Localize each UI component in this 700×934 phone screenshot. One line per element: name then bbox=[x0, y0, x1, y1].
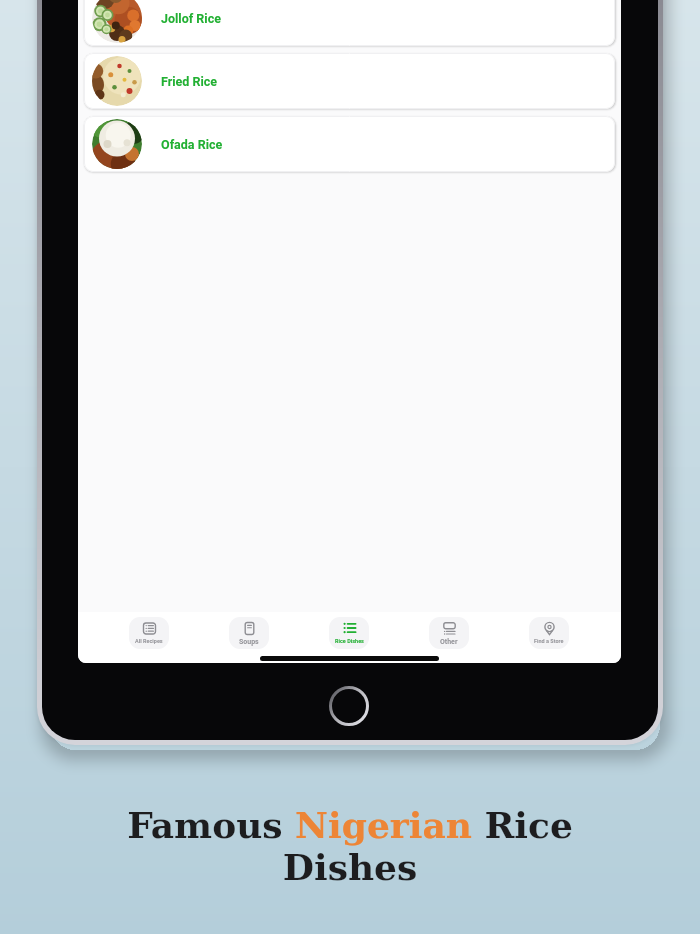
button[interactable]: Find a Store bbox=[529, 617, 569, 649]
button[interactable]: Rice Dishes bbox=[329, 617, 369, 649]
button[interactable]: All Recipes bbox=[129, 617, 169, 649]
button[interactable]: Ofada Rice bbox=[84, 116, 615, 172]
button[interactable]: Fried Rice bbox=[84, 53, 615, 109]
staticText: Jollof Rice bbox=[161, 11, 221, 26]
staticText: All Recipes bbox=[135, 638, 163, 644]
staticText: Other bbox=[440, 638, 458, 646]
button[interactable]: Jollof Rice bbox=[84, 0, 615, 46]
staticText: Famous Nigerian Rice Dishes bbox=[127, 804, 573, 889]
staticText: Find a Store bbox=[534, 638, 564, 644]
button[interactable]: Soups bbox=[229, 617, 269, 649]
staticText: Soups bbox=[239, 638, 259, 646]
staticText: Ofada Rice bbox=[161, 137, 223, 152]
staticText: Fried Rice bbox=[161, 74, 218, 89]
button[interactable]: Other bbox=[429, 617, 469, 649]
staticText: Rice Dishes bbox=[335, 638, 364, 644]
